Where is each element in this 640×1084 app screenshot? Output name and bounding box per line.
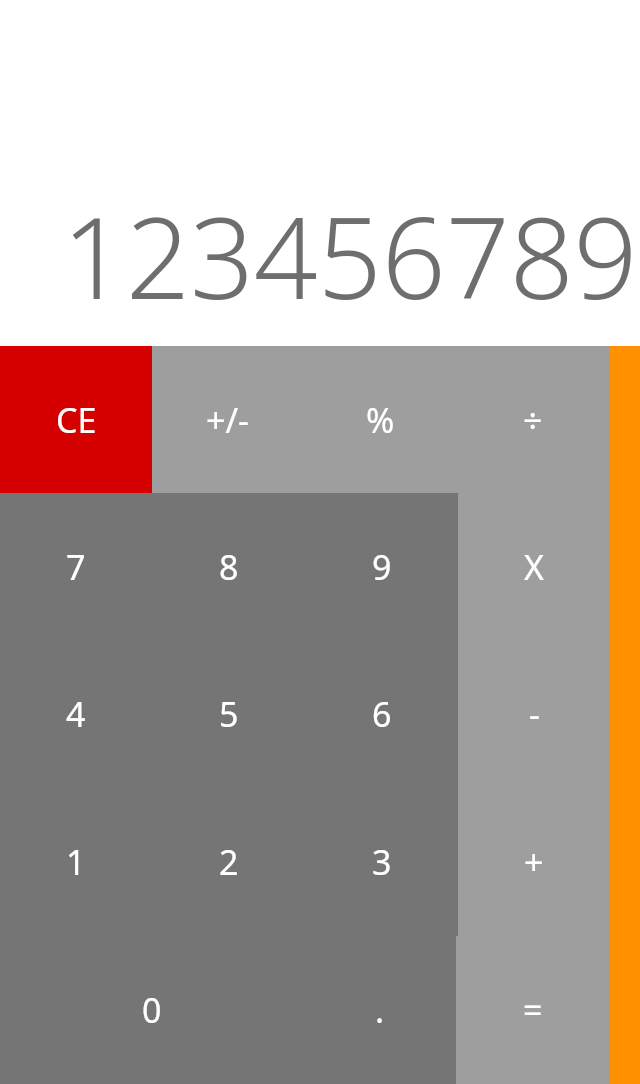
staticText: = — [523, 987, 543, 1033]
staticText: CE — [56, 397, 97, 443]
button[interactable]: % — [304, 346, 456, 493]
button[interactable]: ÷ — [456, 346, 610, 493]
staticText: . — [375, 987, 385, 1033]
staticText: ÷ — [523, 397, 543, 443]
button[interactable]: 8 — [152, 493, 305, 640]
button[interactable]: + — [458, 788, 610, 936]
button[interactable]: 3 — [305, 788, 458, 936]
staticText: % — [366, 397, 395, 443]
staticText: - — [529, 691, 540, 737]
button[interactable]: X — [458, 493, 610, 640]
staticText: +/- — [206, 397, 250, 443]
staticText: + — [524, 839, 544, 885]
button[interactable]: . — [304, 936, 456, 1084]
button[interactable]: +/- — [152, 346, 304, 493]
button[interactable]: 0 — [0, 936, 304, 1084]
staticText: 4 — [66, 691, 86, 737]
button[interactable]: 4 — [0, 640, 152, 788]
staticText: 2 — [219, 839, 239, 885]
staticText: 123456789 — [62, 179, 638, 332]
button[interactable]: 5 — [152, 640, 305, 788]
staticText: 6 — [372, 691, 392, 737]
button[interactable]: 9 — [305, 493, 458, 640]
button[interactable]: - — [458, 640, 610, 788]
button[interactable]: = — [456, 936, 610, 1084]
staticText: 9 — [372, 544, 392, 590]
staticText: 7 — [66, 544, 86, 590]
button[interactable]: CE — [0, 346, 152, 493]
staticText: X — [524, 544, 544, 590]
staticText: 0 — [142, 987, 162, 1033]
staticText: 5 — [219, 691, 239, 737]
staticText: 1 — [66, 839, 86, 885]
staticText: 3 — [372, 839, 392, 885]
button[interactable]: 6 — [305, 640, 458, 788]
button[interactable]: 1 — [0, 788, 152, 936]
button[interactable]: 7 — [0, 493, 152, 640]
button[interactable]: 2 — [152, 788, 305, 936]
staticText: 8 — [219, 544, 239, 590]
